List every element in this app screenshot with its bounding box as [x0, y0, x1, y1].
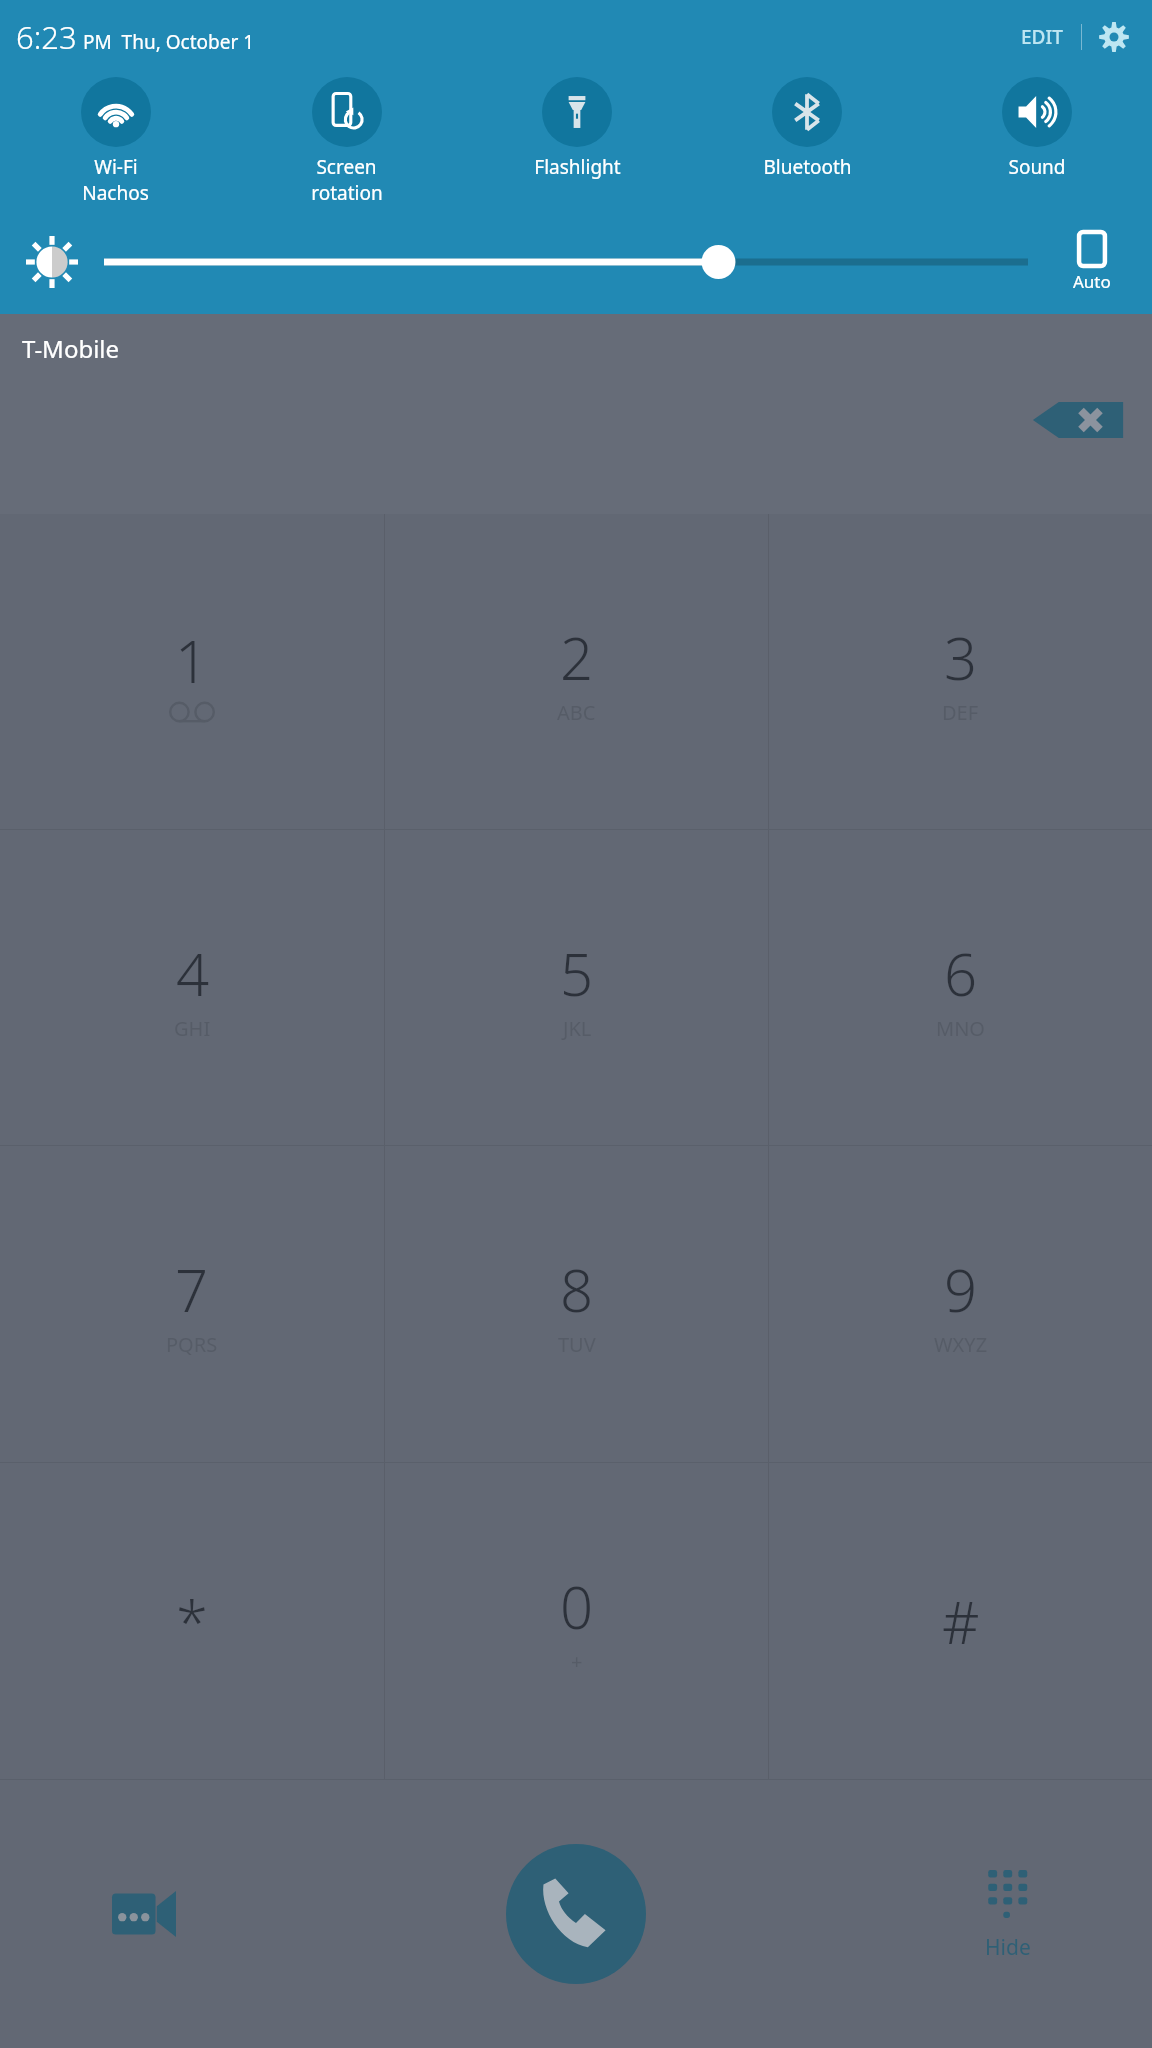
button[interactable] — [104, 238, 1028, 286]
staticText: GHI — [174, 1015, 211, 1042]
staticText: 0 — [560, 1567, 594, 1646]
staticText: rotation — [311, 180, 383, 204]
staticText: * — [176, 1582, 208, 1661]
staticText: EDIT — [1021, 24, 1063, 50]
staticText: Nachos — [82, 180, 149, 204]
other: Brightness — [26, 236, 78, 288]
staticText: 3 — [944, 618, 978, 697]
staticText: Hide — [985, 1933, 1031, 1962]
button[interactable]: Auto — [1054, 232, 1130, 293]
staticText: T-Mobile — [22, 332, 120, 365]
staticText: PQRS — [166, 1331, 218, 1358]
staticText: Wi-Fi — [94, 154, 138, 180]
button[interactable]: Hide — [948, 1867, 1068, 1962]
staticText: 9 — [944, 1250, 978, 1329]
staticText: Bluetooth — [763, 154, 852, 180]
staticText: Auto — [1073, 270, 1111, 293]
staticText: 6:23 — [16, 16, 77, 58]
button[interactable]: Screen — [231, 74, 462, 204]
staticText: Screen — [316, 154, 377, 180]
staticText: Sound — [1008, 154, 1066, 180]
staticText: 7 — [175, 1250, 209, 1329]
staticText: WXYZ — [934, 1331, 988, 1358]
staticText: DEF — [942, 699, 979, 726]
button[interactable]: Flashlight — [462, 74, 692, 204]
button[interactable]: Wi-Fi — [0, 74, 231, 204]
staticText: 6 — [944, 934, 978, 1013]
staticText: ABC — [557, 699, 596, 726]
button[interactable]: Bluetooth — [692, 74, 922, 204]
staticText: 8 — [560, 1250, 594, 1329]
button[interactable]: EDIT — [1013, 18, 1071, 56]
staticText: PM Thu, October 1 — [83, 29, 255, 55]
button[interactable]: Call — [506, 1844, 646, 1984]
button[interactable]: Sound — [922, 74, 1152, 204]
staticText: 5 — [560, 934, 594, 1013]
staticText: + — [571, 1648, 583, 1675]
staticText: 1 — [175, 621, 209, 700]
staticText: 2 — [560, 618, 594, 697]
button[interactable]: Video call — [100, 1870, 188, 1958]
staticText: 4 — [176, 934, 210, 1013]
staticText: JKL — [563, 1015, 592, 1042]
staticText: MNO — [936, 1015, 985, 1042]
button[interactable]: Backspace — [1030, 392, 1126, 448]
button[interactable]: Settings — [1092, 15, 1136, 59]
staticText: TUV — [558, 1331, 596, 1358]
staticText: Flashlight — [534, 154, 621, 180]
staticText: # — [942, 1582, 980, 1661]
